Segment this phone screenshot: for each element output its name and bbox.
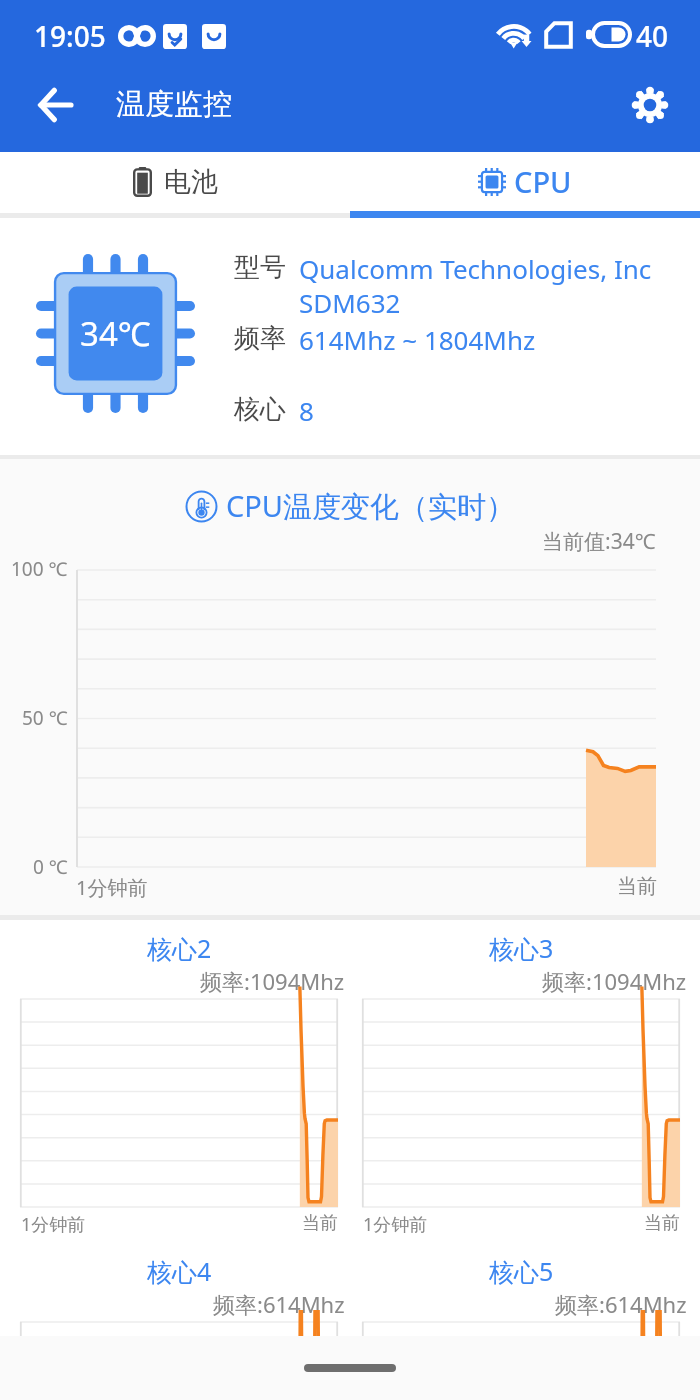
staticText: 核心 xyxy=(234,393,286,426)
staticText: 型号 xyxy=(234,251,286,284)
staticText: 1分钟前 xyxy=(363,1212,428,1237)
staticText: CPU温度变化（实时） xyxy=(226,486,516,526)
button[interactable]: Settings xyxy=(600,57,700,152)
staticText: 50 ℃ xyxy=(22,705,68,731)
staticText: 当前 xyxy=(302,1212,338,1235)
staticText: 100 ℃ xyxy=(11,556,68,582)
staticText: 1分钟前 xyxy=(76,874,148,901)
staticText: 频率 xyxy=(234,322,286,355)
staticText: 当前 xyxy=(644,1212,680,1235)
staticText: 8 xyxy=(299,393,314,428)
staticText: CPU xyxy=(514,162,572,201)
staticText: 核心3 xyxy=(489,931,554,965)
staticText: 1分钟前 xyxy=(21,1212,86,1237)
staticText: 核心2 xyxy=(147,931,212,965)
staticText: 当前 xyxy=(617,874,657,899)
button[interactable]: CPU xyxy=(350,152,700,211)
staticText: 614Mhz ~ 1804Mhz xyxy=(299,322,536,357)
staticText: 40 xyxy=(636,17,669,55)
staticText: 当前值:34℃ xyxy=(542,527,656,556)
staticText: 频率:614Mhz xyxy=(213,1289,345,1319)
staticText: 温度监控 xyxy=(116,86,232,123)
staticText: 电池 xyxy=(164,165,218,199)
button[interactable]: 电池 xyxy=(0,152,350,211)
staticText: 核心5 xyxy=(489,1254,554,1288)
button[interactable]: Back xyxy=(0,57,110,152)
staticText: 0 ℃ xyxy=(33,854,68,880)
staticText: 核心4 xyxy=(147,1254,212,1288)
staticText: 34℃ xyxy=(80,311,151,356)
staticText: 19:05 xyxy=(34,17,106,55)
staticText: 频率:1094Mhz xyxy=(200,966,345,996)
staticText: Qualcomm Technologies, Inc SDM632 xyxy=(299,251,652,321)
staticText: 频率:1094Mhz xyxy=(542,966,687,996)
staticText: 频率:614Mhz xyxy=(555,1289,687,1319)
